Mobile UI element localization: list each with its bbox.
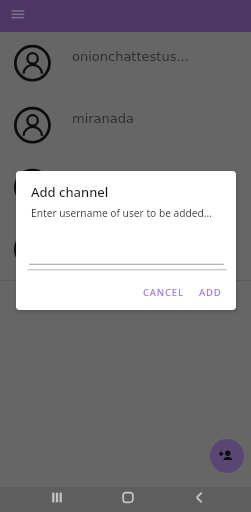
button[interactable]: ADD xyxy=(194,282,227,303)
staticText: Add channel xyxy=(31,183,109,201)
other: Contact avatar xyxy=(12,105,53,146)
button[interactable]: CANCEL xyxy=(138,282,189,303)
button[interactable]: Home xyxy=(112,485,144,510)
staticText: miranada xyxy=(72,111,135,126)
button[interactable]: Contact avatar xyxy=(0,94,251,156)
other: Contact avatar xyxy=(12,167,53,208)
button[interactable]: Back xyxy=(183,485,215,510)
button[interactable]: Contact avatar xyxy=(0,218,251,280)
button[interactable]: Contact avatar xyxy=(0,156,251,218)
staticText: CANCEL xyxy=(143,286,184,299)
button[interactable]: Contact avatar xyxy=(0,32,251,94)
staticText: ADD xyxy=(199,286,222,299)
button[interactable]: Add contact xyxy=(210,439,244,473)
button[interactable]: Open navigation menu xyxy=(6,3,30,27)
other: Contact avatar xyxy=(12,43,53,84)
staticText: Enter username of user to be added... xyxy=(31,206,212,220)
other: Contact avatar xyxy=(12,229,53,270)
staticText: testuser xyxy=(72,173,126,188)
button[interactable]: Recent apps xyxy=(41,485,73,510)
staticText: onionchattestus... xyxy=(72,49,189,64)
